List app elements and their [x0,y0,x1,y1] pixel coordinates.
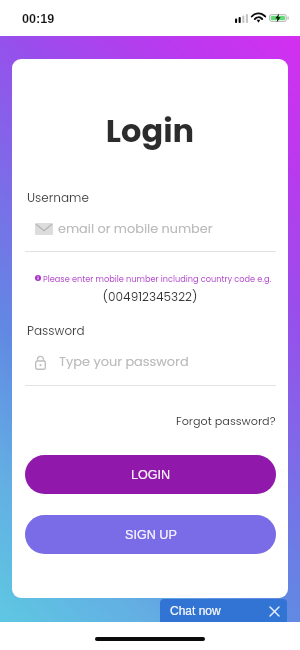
button[interactable]: Forgot password? [176,413,276,429]
staticText: SIGN UP [125,528,177,542]
staticText: Please enter mobile number including cou… [43,273,272,284]
staticText: Type your password [59,352,189,370]
staticText: Login [12,108,288,153]
button[interactable]: LOGIN [25,455,276,494]
button[interactable]: Chat now [160,599,287,622]
staticText: Password [27,322,85,339]
button[interactable]: SIGN UP [25,515,276,554]
staticText: LOGIN [131,468,171,482]
staticText: email or mobile number [58,220,213,238]
staticText: Username [27,189,89,206]
staticText: 00:19 [22,12,55,26]
staticText: (004912345322) [12,288,288,305]
staticText: Chat now [170,604,221,617]
other: Close chat [270,607,279,616]
